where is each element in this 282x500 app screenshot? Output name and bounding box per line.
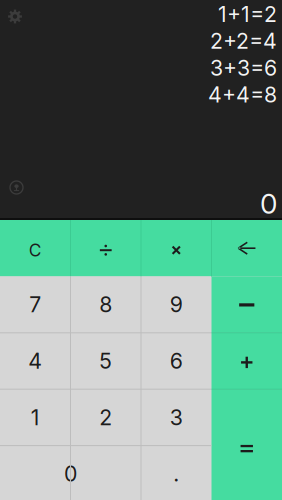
- button[interactable]: 1: [0, 389, 70, 446]
- button[interactable]: 6: [141, 333, 211, 389]
- staticText: 0: [260, 187, 277, 220]
- button[interactable]: Divide: [70, 220, 141, 276]
- staticText: 4: [28, 348, 42, 374]
- staticText: 4+4=8: [208, 82, 277, 108]
- button[interactable]: Backspace: [211, 220, 282, 276]
- button[interactable]: Minus: [211, 276, 282, 333]
- button[interactable]: 2: [70, 389, 141, 446]
- button[interactable]: Settings: [0, 1, 30, 31]
- button[interactable]: Voice input: [1, 172, 31, 202]
- button[interactable]: 7: [0, 276, 70, 333]
- staticText: .: [173, 461, 179, 487]
- staticText: 5: [99, 348, 112, 374]
- staticText: 6: [170, 348, 183, 374]
- button[interactable]: 3: [141, 389, 211, 446]
- staticText: 3: [170, 404, 183, 430]
- staticText: 1+1=2: [218, 1, 277, 27]
- button[interactable]: Equals: [211, 389, 282, 500]
- button[interactable]: Multiply: [141, 220, 211, 276]
- staticText: 3+3=6: [210, 55, 277, 81]
- button[interactable]: 4: [0, 333, 70, 389]
- button[interactable]: 0: [0, 446, 141, 500]
- staticText: 2: [99, 404, 112, 430]
- button[interactable]: 8: [70, 276, 141, 333]
- staticText: 1: [31, 404, 40, 430]
- staticText: 0: [64, 461, 77, 487]
- button[interactable]: 5: [70, 333, 141, 389]
- button[interactable]: 9: [141, 276, 211, 333]
- button[interactable]: Plus: [211, 333, 282, 389]
- staticText: 7: [29, 292, 41, 317]
- staticText: 8: [99, 292, 112, 317]
- button[interactable]: .: [141, 446, 211, 500]
- staticText: 9: [170, 292, 183, 317]
- staticText: 2+2=4: [210, 28, 277, 54]
- button[interactable]: C: [0, 220, 70, 276]
- staticText: C: [29, 240, 42, 261]
